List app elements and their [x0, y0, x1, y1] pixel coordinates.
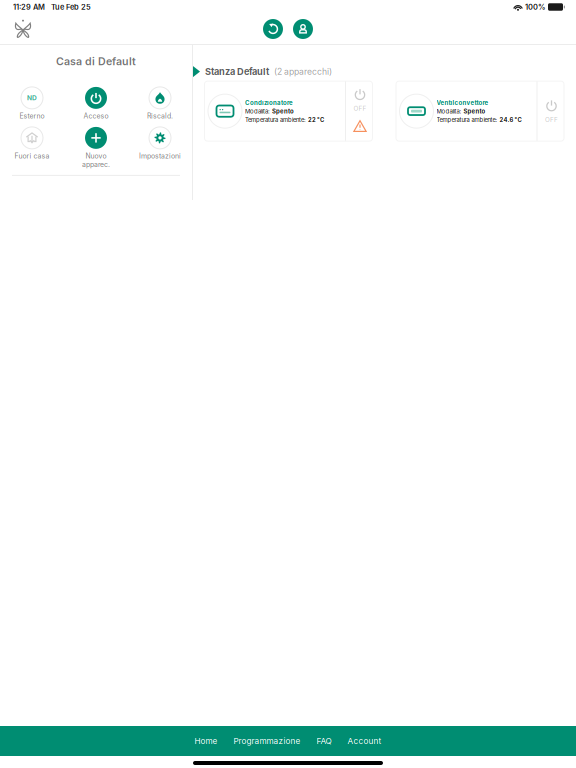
button[interactable]: Menu	[12, 18, 34, 40]
staticText: Modalità: Spento	[436, 108, 485, 115]
staticText: Casa di Default	[56, 55, 136, 68]
button[interactable]: Condizionatore	[204, 81, 372, 141]
staticText: Home	[194, 736, 217, 746]
button[interactable]: FAQ	[308, 736, 339, 746]
button[interactable]: Impostazioni	[128, 127, 192, 167]
staticText: Fuori casa	[14, 152, 49, 160]
staticText: Programmazione	[233, 736, 300, 746]
staticText: Tue Feb 25	[45, 2, 91, 12]
staticText: (2 apparecchi)	[274, 66, 332, 77]
staticText: Modalità: Spento	[245, 108, 294, 115]
staticText: Esterno	[19, 112, 44, 120]
staticText: apparec.	[82, 160, 110, 168]
button[interactable]: Account	[339, 736, 389, 746]
staticText: Stanza Default	[205, 66, 269, 77]
button[interactable]: Programmazione	[225, 736, 308, 746]
button[interactable]: Account	[293, 19, 313, 39]
staticText: 11:29 AM	[13, 2, 45, 12]
staticText: Impostazioni	[139, 152, 181, 160]
staticText: OFF	[545, 116, 558, 123]
button[interactable]: Home	[186, 736, 225, 746]
staticText: Condizionatore	[245, 99, 293, 106]
staticText: Temperatura ambiente: 22 °C	[245, 116, 324, 123]
staticText: Acceso	[83, 112, 108, 120]
staticText: Ventilconvettore	[436, 99, 488, 106]
button[interactable]: Aggiorna	[263, 19, 283, 39]
button[interactable]: Nuovo	[64, 127, 128, 167]
button[interactable]: Riscald.	[128, 87, 192, 127]
staticText: OFF	[353, 105, 366, 112]
staticText: Account	[347, 736, 381, 746]
staticText: 100%	[523, 2, 546, 12]
button[interactable]: ND	[0, 87, 64, 127]
button[interactable]: Acceso	[64, 87, 128, 127]
button[interactable]: Fuori casa	[0, 127, 64, 167]
staticText: ND	[27, 94, 37, 102]
staticText: Temperatura ambiente: 24.6 °C	[436, 116, 521, 123]
staticText: Nuovo	[85, 152, 106, 160]
staticText: Riscald.	[147, 112, 173, 120]
button[interactable]: Ventilconvettore	[396, 81, 564, 141]
staticText: FAQ	[316, 736, 331, 746]
